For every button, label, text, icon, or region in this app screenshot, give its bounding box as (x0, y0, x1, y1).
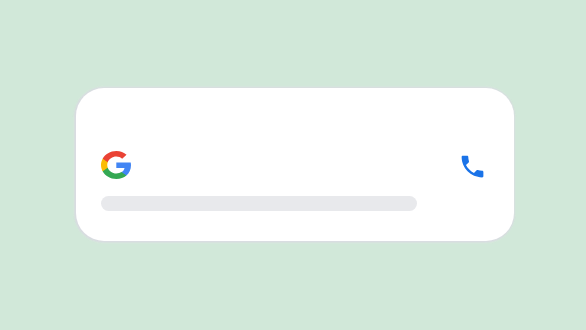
button[interactable]: Google Search (76, 88, 514, 241)
button[interactable]: Google Search (101, 151, 131, 179)
button[interactable]: Call (458, 152, 487, 181)
